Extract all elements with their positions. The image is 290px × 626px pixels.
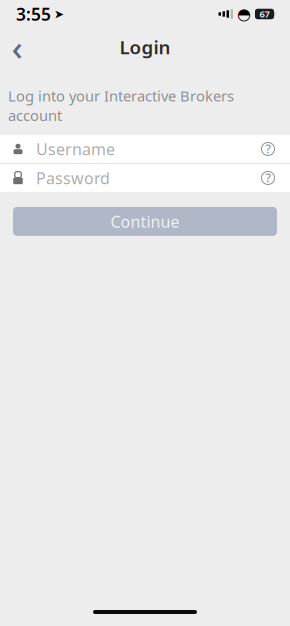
staticText: ‹	[11, 24, 22, 70]
button[interactable]: Help with Username	[254, 135, 282, 163]
staticText: 3:55	[16, 2, 51, 25]
staticText: ◓	[237, 5, 251, 23]
staticText: ?	[265, 170, 270, 186]
staticText: Login	[119, 35, 170, 59]
staticText: Log into your Interactive Brokers accoun…	[8, 86, 234, 125]
staticText: 67	[259, 8, 269, 20]
staticText: Username	[36, 138, 115, 159]
staticText: Password	[36, 167, 110, 188]
staticText: Continue	[110, 211, 179, 232]
button[interactable]: Back	[0, 30, 34, 64]
staticText: ➤	[54, 7, 64, 21]
button[interactable]: Help with Password	[254, 164, 282, 192]
staticText: ?	[265, 141, 270, 157]
button[interactable]: Continue	[13, 207, 277, 236]
